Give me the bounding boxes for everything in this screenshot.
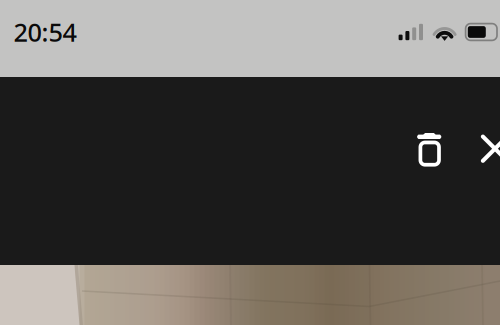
button[interactable]: Delete — [406, 127, 452, 173]
staticText: 20:54 — [13, 15, 76, 49]
button[interactable]: Close — [472, 126, 500, 172]
